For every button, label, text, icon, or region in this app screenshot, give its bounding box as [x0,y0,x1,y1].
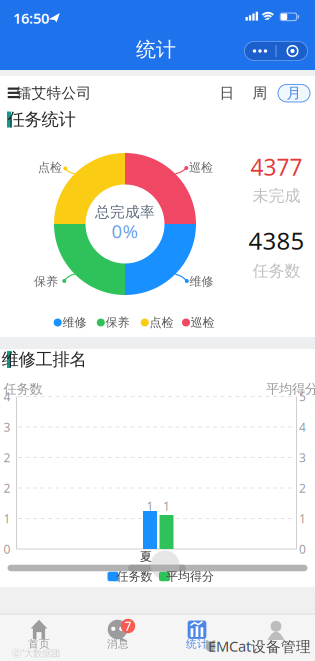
button[interactable]: 统计 [175,614,219,650]
staticText: 任务数 [3,381,42,397]
staticText: 任务统计 [7,109,75,130]
staticText: 统计 [136,37,176,62]
button[interactable] [244,41,307,60]
button[interactable]: 镭艾特公司 [7,87,87,99]
staticText: 2 [3,480,10,496]
staticText: 月 [286,84,301,102]
staticText: 未完成 [252,186,300,206]
staticText: 2 [3,449,10,465]
staticText: EMCat设备管理 [208,636,311,656]
staticText: 消息 [107,637,129,650]
staticText: 维修 [62,315,86,330]
button[interactable]: 日 [216,85,238,101]
staticText: 0 [3,541,10,557]
staticText: 4 [3,388,10,404]
staticText: 5 [299,388,306,404]
staticText: 首页 [28,637,50,650]
staticText: 4 [299,419,306,435]
staticText: 0% [111,219,138,243]
staticText: 任务数 [116,569,152,584]
button[interactable] [254,614,298,650]
button[interactable]: 7 [96,614,140,650]
staticText: 总完成率 [95,203,155,221]
staticText: 保养 [105,315,129,330]
staticText: 维修工排名 [1,349,86,370]
staticText: 16:50 [13,8,49,28]
staticText: 日 [219,84,234,102]
staticText: 1 [3,510,10,526]
staticText: 巡检 [189,160,213,175]
staticText: 任务数 [252,261,300,281]
staticText: 保养 [34,274,58,289]
button[interactable]: 月 [278,84,310,102]
staticText: 0 [299,541,306,557]
staticText: 3 [299,449,306,465]
staticText: 维修 [189,274,213,289]
staticText: 4385 [248,225,304,256]
staticText: 夏 [140,549,152,564]
staticText: 2 [299,480,306,496]
staticText: 平均得分 [266,381,315,397]
staticText: 1 [163,498,170,514]
staticText: ⓓ”大数据团 [12,647,60,659]
staticText: 1 [146,498,153,514]
staticText: 镭艾特公司 [16,84,91,102]
staticText: 4377 [250,152,302,182]
staticText: 平均得分 [166,569,214,584]
button[interactable]: 首页 [17,614,61,650]
staticText: 7 [124,618,131,634]
staticText: 点检 [38,160,62,175]
button[interactable]: 周 [249,85,271,101]
staticText: 统计 [186,637,208,650]
staticText: 点检 [149,315,173,330]
staticText: 3 [3,419,10,435]
staticText: 巡检 [190,315,214,330]
staticText: 1 [299,510,306,526]
staticText: 周 [252,84,267,102]
